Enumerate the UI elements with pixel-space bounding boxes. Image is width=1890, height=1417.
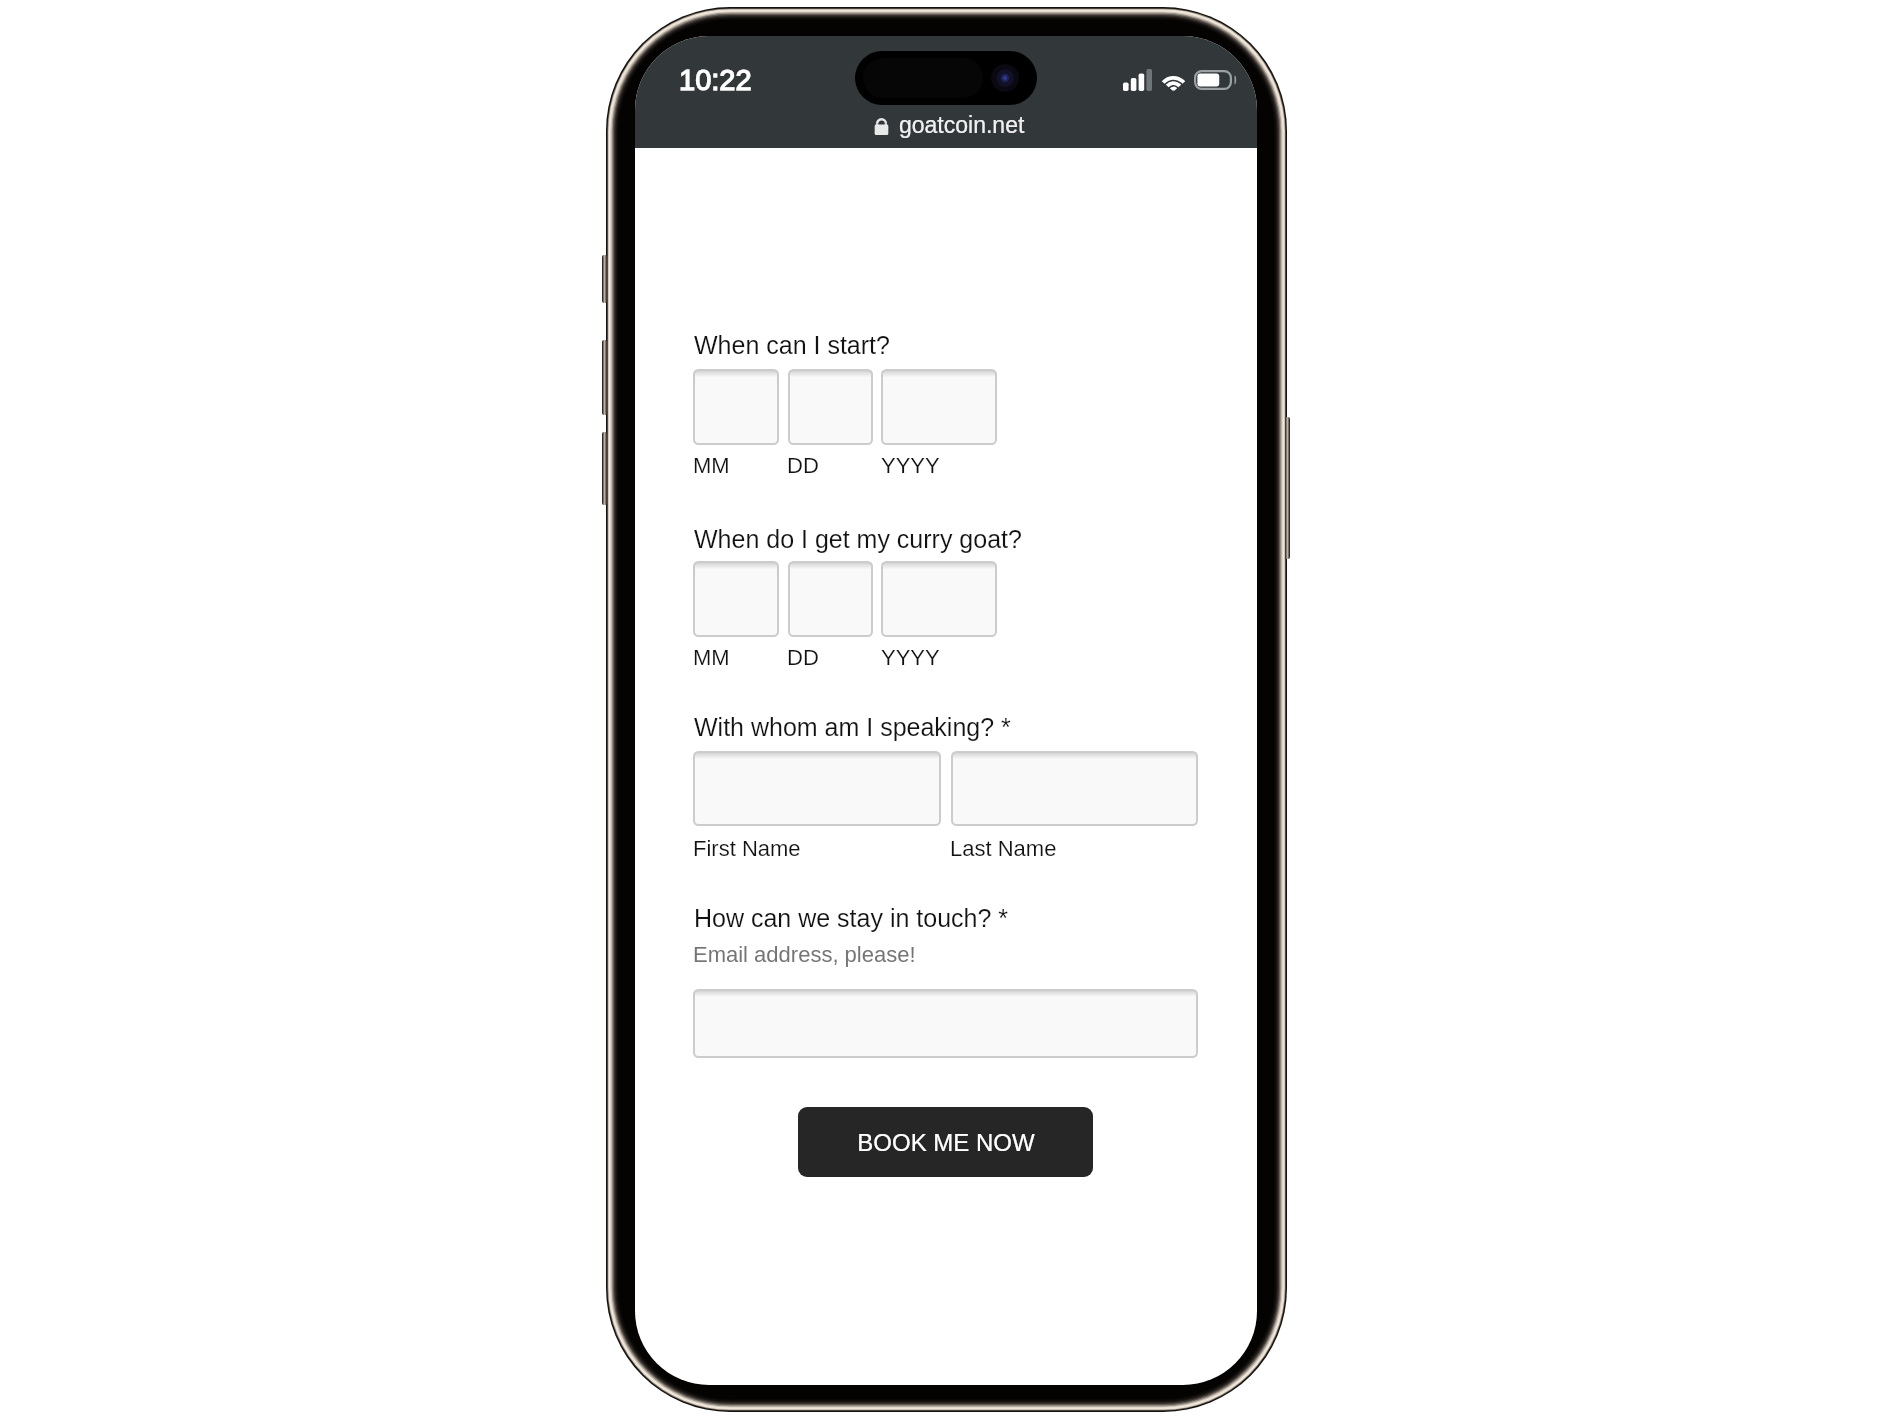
button[interactable]: Last Name — [952, 752, 1197, 825]
button[interactable]: Email address — [694, 990, 1197, 1057]
staticText: YYYY — [881, 645, 940, 670]
staticText: DD — [787, 453, 819, 478]
staticText: When can I start? — [694, 331, 890, 359]
staticText: goatcoin.net — [899, 112, 1025, 138]
button[interactable]: Start month, MM — [694, 370, 778, 444]
staticText: DD — [787, 645, 819, 670]
staticText: Email address, please! — [693, 942, 916, 967]
button[interactable]: Start year, YYYY — [882, 370, 996, 444]
staticText: BOOK ME NOW — [857, 1129, 1035, 1156]
staticText: How can we stay in touch? * — [694, 904, 1009, 932]
staticText: MM — [693, 645, 730, 670]
button[interactable]: Curry goat day, DD — [789, 562, 872, 636]
button[interactable]: BOOK ME NOW — [798, 1107, 1093, 1177]
button[interactable]: First Name — [694, 752, 940, 825]
staticText: YYYY — [881, 453, 940, 478]
staticText: Last Name — [950, 836, 1057, 861]
button[interactable]: Curry goat year, YYYY — [882, 562, 996, 636]
staticText: When do I get my curry goat? — [694, 525, 1022, 553]
button[interactable]: Address bar, goatcoin.net — [874, 112, 1025, 138]
staticText: First Name — [693, 836, 801, 861]
button[interactable]: Curry goat month, MM — [694, 562, 778, 636]
button[interactable]: Start day, DD — [789, 370, 872, 444]
staticText: 10:22 — [679, 64, 752, 96]
staticText: With whom am I speaking? * — [694, 713, 1011, 741]
staticText: MM — [693, 453, 730, 478]
